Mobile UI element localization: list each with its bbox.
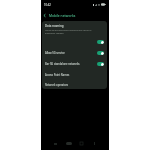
staticText: Bar 5G standalone networks — [45, 62, 96, 66]
button[interactable] — [97, 62, 104, 66]
staticText: Using 4G/5G data while roaming may resul… — [45, 29, 93, 35]
staticText: Data roaming — [45, 24, 64, 28]
button[interactable] — [97, 40, 104, 44]
button[interactable]: Back — [77, 139, 86, 148]
button[interactable]: Home — [64, 139, 73, 148]
staticText: Mobile networks — [49, 13, 76, 17]
button[interactable]: Bar 5G standalone networks — [42, 58, 107, 69]
staticText: 10:42 — [44, 3, 51, 7]
button[interactable] — [97, 51, 104, 55]
staticText: Access Point Names — [45, 73, 70, 77]
button[interactable]: Network operators — [42, 80, 107, 89]
staticText: Allow 5G service — [45, 51, 96, 55]
staticText: Network operators — [45, 83, 69, 87]
button[interactable]: More — [90, 139, 99, 148]
button[interactable]: Recents — [51, 139, 60, 148]
button[interactable]: Back — [41, 12, 48, 19]
button[interactable]: Allow 5G service — [42, 47, 107, 58]
button[interactable]: Data roaming — [42, 21, 107, 47]
button[interactable]: Access Point Names — [42, 69, 107, 80]
